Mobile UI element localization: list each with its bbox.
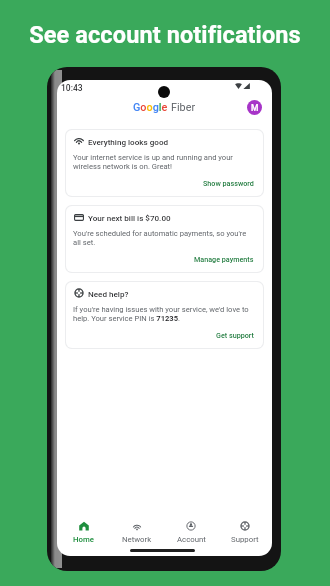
button[interactable]: Network [110, 512, 164, 544]
staticText: Fiber [171, 101, 196, 114]
button[interactable]: Account profile [247, 100, 262, 115]
button[interactable]: Home [57, 512, 110, 544]
staticText: You're scheduled for automatic payments,… [73, 229, 254, 247]
button[interactable]: Get support [216, 331, 254, 339]
button[interactable]: Show password [203, 179, 254, 187]
button[interactable]: Need help? [66, 282, 263, 348]
staticText: Google [133, 101, 168, 114]
staticText: Network [122, 535, 152, 544]
button[interactable]: Account [164, 512, 218, 544]
staticText: M [251, 103, 259, 113]
button[interactable]: Support [218, 512, 272, 544]
button[interactable]: Everything looks good [66, 130, 263, 196]
staticText: Support [231, 535, 259, 544]
button[interactable]: Manage payments [194, 255, 254, 263]
staticText: Account [177, 535, 206, 544]
staticText: Your internet service is up and running … [73, 153, 254, 171]
staticText: 10:43 [61, 83, 83, 93]
staticText: Everything looks good [88, 137, 169, 146]
staticText: Need help? [88, 289, 129, 298]
staticText: See account notifications [0, 21, 330, 49]
button[interactable]: Your next bill is $70.00 [66, 206, 263, 272]
staticText: Your next bill is $70.00 [88, 213, 171, 222]
staticText: Home [73, 535, 94, 544]
staticText: If you're having issues with your servic… [73, 305, 254, 323]
